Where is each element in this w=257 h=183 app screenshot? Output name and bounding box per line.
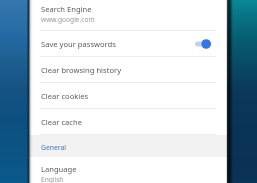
staticText: Search Engine <box>41 4 92 14</box>
staticText: Save your passwords <box>41 39 195 49</box>
button[interactable]: Clear cache <box>28 109 227 135</box>
staticText: Clear cookies <box>41 91 211 101</box>
button[interactable]: Clear cookies <box>28 83 227 109</box>
staticText: www.google.com <box>41 15 95 24</box>
button[interactable]: Search Engine <box>28 0 227 31</box>
staticText: English <box>41 175 64 183</box>
button[interactable]: Clear browsing history <box>28 57 227 83</box>
button[interactable]: Save your passwords <box>28 31 227 57</box>
staticText: Language <box>41 164 77 174</box>
button[interactable]: Save your passwords toggle <box>195 39 211 49</box>
button[interactable]: Language <box>28 157 227 183</box>
staticText: Clear browsing history <box>41 65 211 75</box>
staticText: General <box>41 143 67 152</box>
staticText: Clear cache <box>41 117 211 127</box>
